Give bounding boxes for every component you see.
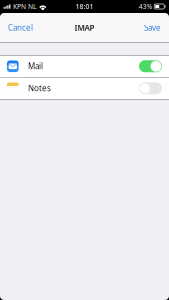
button[interactable]: Cancel — [0, 13, 41, 42]
button[interactable]: Mail — [0, 55, 169, 77]
button[interactable]: Notes — [0, 77, 169, 99]
staticText: 18:01 — [75, 2, 93, 11]
staticText: Cancel — [8, 22, 33, 33]
staticText: Save — [144, 22, 161, 33]
staticText: Mail — [28, 61, 43, 71]
staticText: 43% — [139, 2, 153, 11]
staticText: Notes — [28, 83, 51, 93]
button[interactable]: Save — [136, 13, 169, 42]
staticText: IMAP — [74, 22, 94, 33]
staticText: KPN NL — [13, 2, 36, 11]
